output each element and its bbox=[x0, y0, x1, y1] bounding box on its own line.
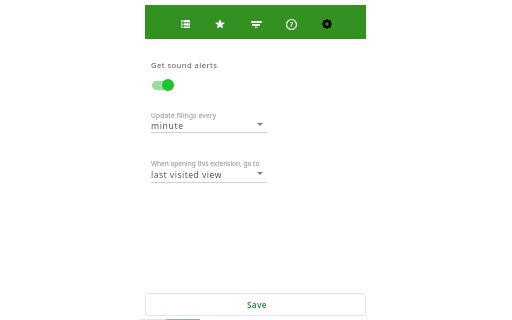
staticText: Update filings every bbox=[151, 111, 217, 120]
button[interactable]: Help bbox=[278, 10, 304, 38]
button[interactable]: When opening this extension, go to bbox=[151, 159, 267, 183]
staticText: last visited view bbox=[151, 169, 222, 181]
button[interactable]: Settings bbox=[314, 10, 340, 38]
staticText: minute bbox=[151, 120, 184, 132]
staticText: When opening this extension, go to bbox=[151, 159, 260, 168]
button[interactable]: Filter bbox=[243, 10, 269, 38]
button[interactable]: Update filings every bbox=[151, 111, 267, 133]
staticText: Get sound alerts bbox=[151, 60, 218, 70]
button[interactable]: Save bbox=[145, 293, 366, 316]
button[interactable]: Get sound alerts toggle, on bbox=[148, 56, 268, 94]
button[interactable]: Favorites bbox=[207, 10, 233, 38]
staticText: ? bbox=[290, 20, 293, 29]
button[interactable]: Filings list bbox=[172, 10, 198, 38]
staticText: Save bbox=[247, 299, 267, 310]
